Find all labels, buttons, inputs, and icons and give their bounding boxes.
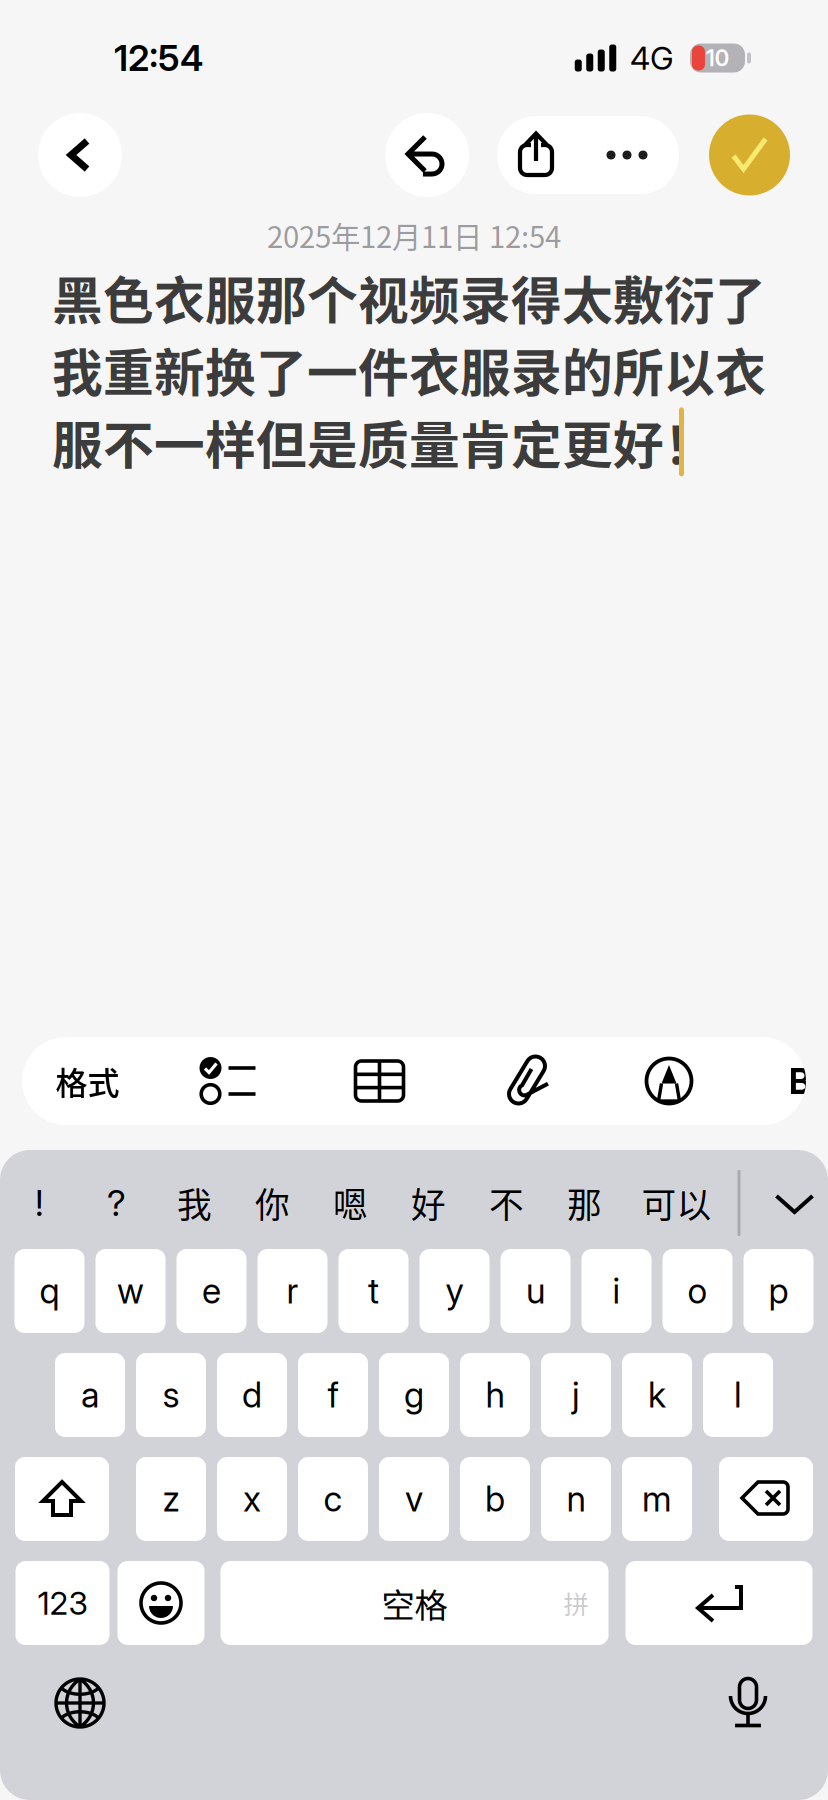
staticText: 拼	[563, 1585, 588, 1621]
staticText: 你	[255, 1178, 290, 1228]
button[interactable]: p	[743, 1249, 813, 1333]
button[interactable]: i	[581, 1249, 651, 1333]
staticText: c	[323, 1478, 342, 1520]
button[interactable]: Hide candidates	[748, 1163, 828, 1243]
staticText: t	[368, 1270, 379, 1312]
button[interactable]: g	[379, 1353, 449, 1437]
staticText: w	[117, 1270, 144, 1312]
staticText: 黑色衣服那个视频录得太敷衍了	[52, 261, 766, 334]
staticText: o	[687, 1270, 707, 1312]
staticText: k	[648, 1374, 666, 1416]
button[interactable]: Delete	[719, 1457, 813, 1541]
button[interactable]: j	[541, 1353, 611, 1437]
button[interactable]: 不	[467, 1163, 545, 1243]
staticText: x	[243, 1478, 261, 1520]
button[interactable]: !	[1, 1163, 77, 1243]
staticText: 10	[705, 44, 729, 72]
button[interactable]: 嗯	[311, 1163, 389, 1243]
button[interactable]: Shift	[15, 1457, 109, 1541]
button[interactable]: w	[95, 1249, 165, 1333]
staticText: !	[35, 1181, 44, 1225]
staticText: j	[572, 1374, 580, 1416]
button[interactable]: 我	[155, 1163, 233, 1243]
button[interactable]: u	[500, 1249, 570, 1333]
button[interactable]: l	[703, 1353, 773, 1437]
staticText: 4G	[630, 39, 674, 77]
staticText: z	[162, 1478, 179, 1520]
staticText: y	[445, 1270, 463, 1312]
staticText: r	[286, 1270, 298, 1312]
staticText: 不	[489, 1178, 524, 1228]
button[interactable]: Table	[304, 1037, 455, 1125]
staticText: 2025年12月11日 12:54	[267, 214, 561, 256]
button[interactable]: 你	[233, 1163, 311, 1243]
staticText: B	[788, 1059, 811, 1103]
button[interactable]: a	[55, 1353, 125, 1437]
button[interactable]: ?	[77, 1163, 155, 1243]
staticText: d	[242, 1374, 262, 1416]
button[interactable]: Back	[38, 113, 122, 197]
button[interactable]: n	[541, 1457, 611, 1541]
staticText: 好	[411, 1178, 446, 1228]
button[interactable]: r	[257, 1249, 327, 1333]
staticText: v	[405, 1478, 423, 1520]
button[interactable]: q	[14, 1249, 84, 1333]
button[interactable]: 空格	[220, 1561, 608, 1645]
staticText: l	[734, 1374, 742, 1416]
button[interactable]: More options	[575, 116, 679, 194]
button[interactable]: h	[460, 1353, 530, 1437]
staticText: ?	[107, 1181, 126, 1225]
button[interactable]: x	[217, 1457, 287, 1541]
staticText: m	[642, 1478, 672, 1520]
button[interactable]: 格式	[22, 1037, 153, 1125]
button[interactable]: Draw	[602, 1037, 736, 1125]
staticText: 123	[37, 1584, 87, 1622]
staticText: 格式	[55, 1058, 119, 1104]
button[interactable]: 那	[545, 1163, 623, 1243]
button[interactable]: o	[662, 1249, 732, 1333]
button[interactable]: s	[136, 1353, 206, 1437]
staticText: u	[526, 1270, 545, 1312]
button[interactable]: f	[298, 1353, 368, 1437]
staticText: b	[485, 1478, 505, 1520]
button[interactable]: d	[217, 1353, 287, 1437]
staticText: f	[327, 1374, 338, 1416]
button[interactable]: 好	[389, 1163, 467, 1243]
button[interactable]: y	[419, 1249, 489, 1333]
staticText: 12:54	[114, 36, 203, 80]
button[interactable]: Done	[709, 114, 790, 195]
button[interactable]: k	[622, 1353, 692, 1437]
staticText: i	[612, 1270, 620, 1312]
button[interactable]: Switch keyboard	[28, 1661, 132, 1745]
staticText: g	[404, 1374, 424, 1416]
staticText: p	[768, 1270, 788, 1312]
button[interactable]: Undo	[385, 113, 469, 197]
staticText: 我	[177, 1178, 212, 1228]
button[interactable]: Return	[625, 1561, 812, 1645]
button[interactable]: v	[379, 1457, 449, 1541]
button[interactable]: Checklist	[153, 1037, 304, 1125]
staticText: 我重新换了一件衣服录的所以衣	[52, 333, 766, 406]
staticText: 嗯	[333, 1178, 368, 1228]
button[interactable]: Share	[497, 116, 575, 194]
button[interactable]: Dictation	[696, 1661, 800, 1745]
button[interactable]: Attach file	[455, 1037, 602, 1125]
button[interactable]: c	[298, 1457, 368, 1541]
button[interactable]: m	[622, 1457, 692, 1541]
button[interactable]: t	[338, 1249, 408, 1333]
staticText: h	[485, 1374, 504, 1416]
staticText: a	[81, 1374, 99, 1416]
button[interactable]: 123	[15, 1561, 109, 1645]
staticText: e	[202, 1270, 221, 1312]
staticText: 空格	[381, 1579, 447, 1627]
button[interactable]: e	[176, 1249, 246, 1333]
staticText: s	[162, 1374, 179, 1416]
staticText: 那	[567, 1178, 602, 1228]
button[interactable]: Bold	[736, 1037, 828, 1125]
staticText: 服不一样但是质量肯定更好！	[52, 405, 715, 479]
button[interactable]: b	[460, 1457, 530, 1541]
button[interactable]: Emoji	[117, 1561, 204, 1645]
staticText: n	[566, 1478, 585, 1520]
button[interactable]: z	[136, 1457, 206, 1541]
button[interactable]: 可以	[623, 1163, 729, 1243]
